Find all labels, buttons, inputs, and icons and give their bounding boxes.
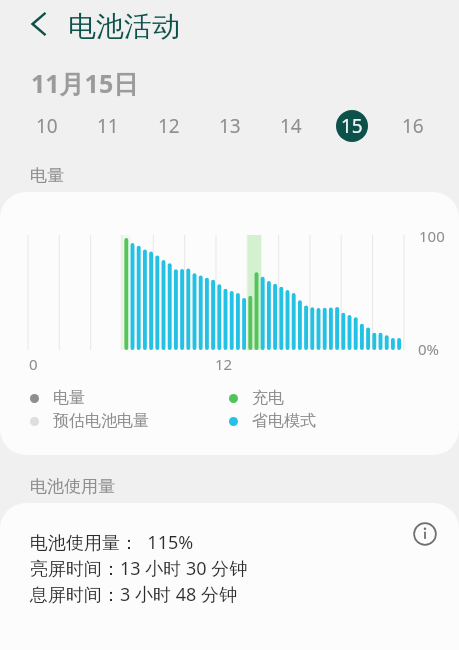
staticText: 亮屏时间：13 小时 30 分钟 — [30, 556, 248, 581]
staticText: 0% — [418, 339, 440, 359]
button[interactable]: Info — [404, 513, 446, 555]
staticText: 电池使用量 — [30, 476, 115, 497]
staticText: 电量 — [30, 165, 64, 186]
button[interactable]: 16 — [382, 108, 443, 144]
button[interactable]: 14 — [260, 108, 321, 144]
staticText: 15 — [341, 113, 363, 139]
staticText: 预估电池电量 — [53, 411, 149, 431]
button[interactable]: 15 — [321, 108, 382, 144]
staticText: 息屏时间：3 小时 48 分钟 — [30, 582, 237, 607]
staticText: 电池活动 — [68, 9, 180, 44]
button[interactable]: 10 — [16, 108, 77, 144]
staticText: 16 — [402, 113, 424, 139]
staticText: 电池使用量： 115% — [30, 530, 194, 555]
staticText: 11月15日 — [31, 66, 139, 100]
staticText: 100 — [419, 226, 445, 246]
staticText: 12 — [215, 354, 233, 374]
staticText: 充电 — [252, 388, 284, 408]
button[interactable]: 13 — [199, 108, 260, 144]
staticText: 10 — [36, 113, 58, 139]
staticText: 11 — [97, 113, 119, 139]
button[interactable]: Back — [20, 6, 55, 41]
staticText: 12 — [158, 113, 180, 139]
staticText: 0 — [29, 354, 38, 374]
staticText: 14 — [280, 113, 302, 139]
staticText: 省电模式 — [252, 411, 316, 431]
staticText: 电量 — [53, 388, 85, 408]
button[interactable]: 12 — [138, 108, 199, 144]
button[interactable]: 11 — [77, 108, 138, 144]
staticText: 13 — [219, 113, 241, 139]
